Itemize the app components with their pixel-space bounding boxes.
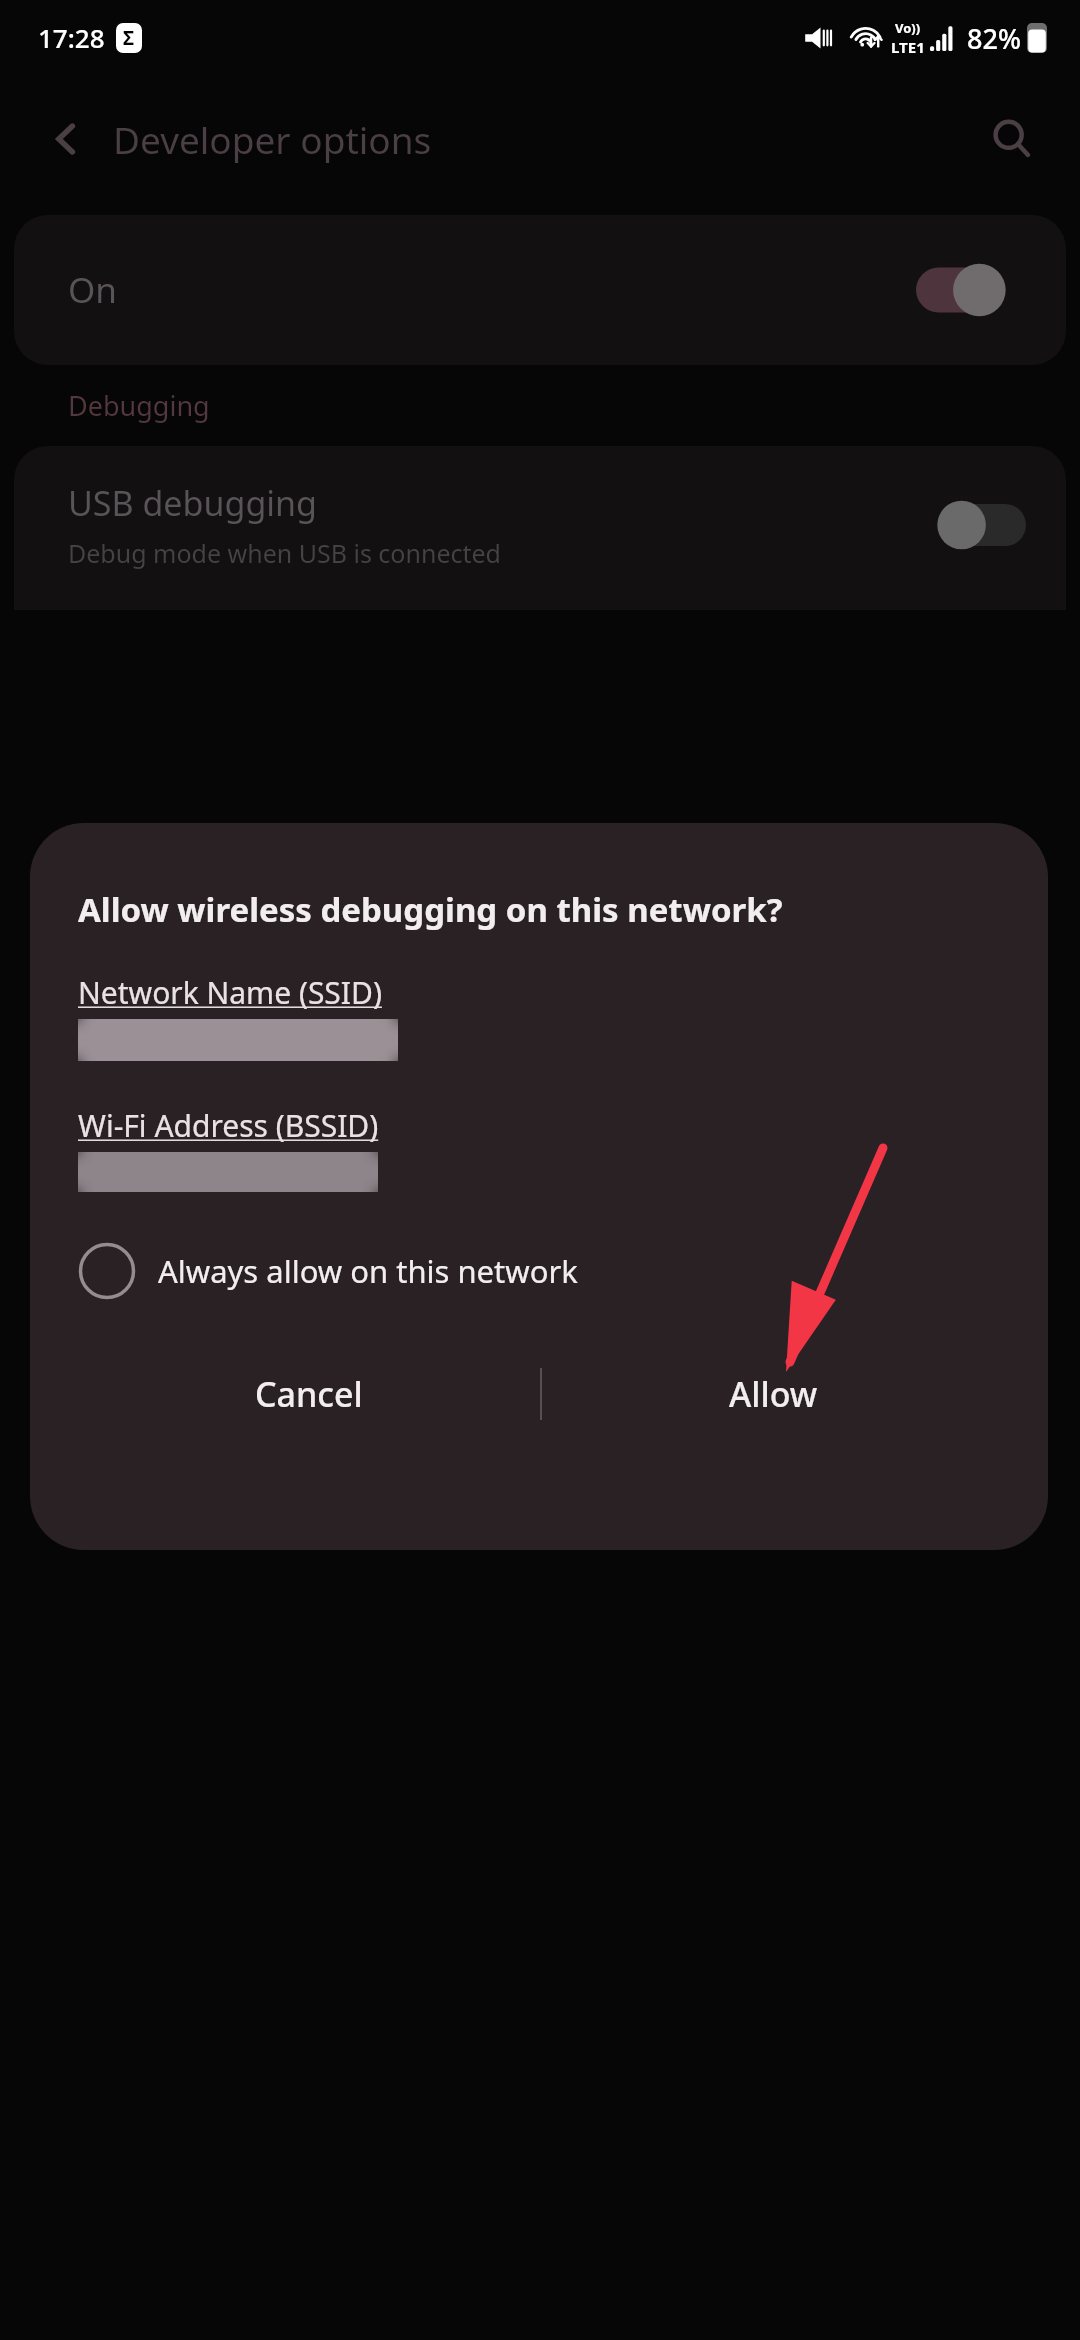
staticText: Always allow on this network — [158, 1250, 578, 1292]
staticText: 17:28 — [38, 20, 105, 55]
staticText: Show a button in the power menu for taki… — [66, 947, 659, 1017]
staticText: Enable verbose vendor logging — [66, 1084, 549, 1129]
button[interactable]: Enable verbose vendor logging — [0, 1052, 1080, 1278]
staticText: Cancel — [255, 1371, 363, 1417]
staticText: Allow wireless debugging on this network… — [78, 887, 783, 932]
staticText: Developer options — [113, 114, 432, 164]
staticText: On — [68, 266, 117, 314]
button[interactable]: Enable view attribute inspection — [0, 1279, 1080, 1399]
button[interactable]: Bug report shortcut — [0, 861, 1080, 1051]
button[interactable]: Cancel — [78, 1334, 540, 1454]
staticText: Include additional device-specific vendo… — [66, 1138, 680, 1244]
staticText: USB debugging — [68, 480, 317, 526]
staticText: Network Name (SSID) — [78, 972, 382, 1013]
staticText: Debug mode when USB is connected — [68, 536, 501, 570]
button[interactable]: USB debugging — [14, 446, 1066, 610]
staticText: LTE1 — [891, 37, 925, 57]
button[interactable]: Search — [974, 101, 1050, 177]
button[interactable]: Allow — [542, 1334, 1004, 1454]
staticText: Vo)) — [895, 19, 921, 37]
staticText: Debugging — [68, 387, 210, 424]
staticText: Bug report shortcut — [66, 893, 373, 938]
staticText: Σ — [123, 25, 135, 51]
button[interactable]: On — [14, 215, 1066, 365]
staticText: Wi-Fi Address (BSSID) — [78, 1105, 379, 1146]
staticText: 82% — [967, 20, 1021, 57]
staticText: Allow — [729, 1371, 818, 1417]
button[interactable]: Select debug app — [0, 1400, 1080, 1511]
button[interactable]: Back — [36, 108, 98, 170]
button[interactable]: Always allow on this network — [78, 1242, 1004, 1300]
